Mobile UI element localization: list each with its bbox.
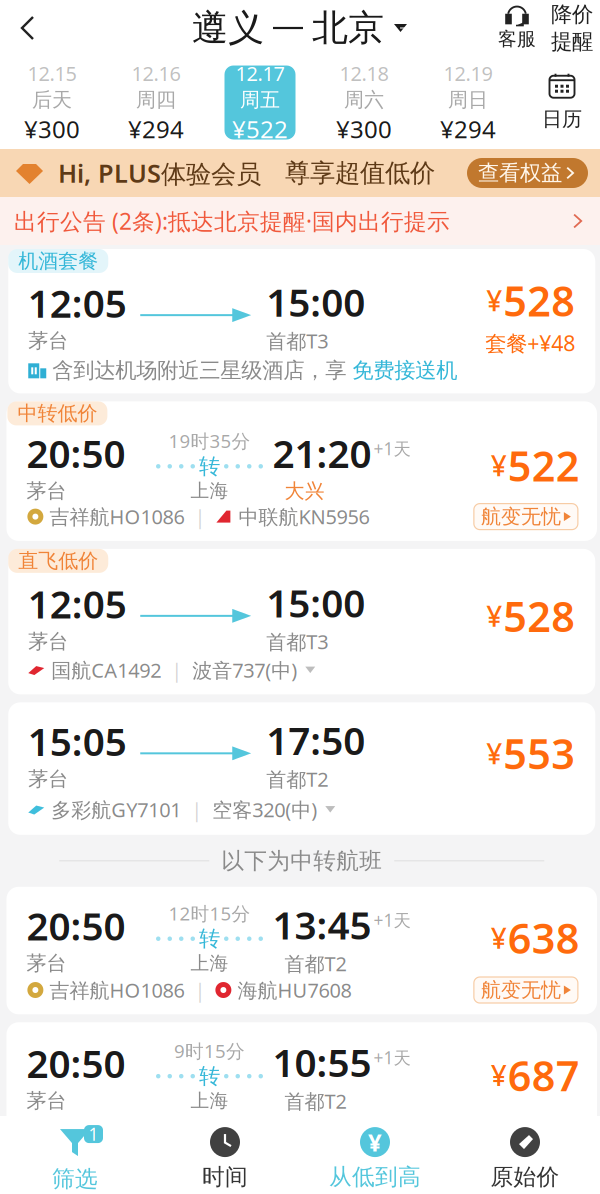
staticText: 转 xyxy=(199,926,220,952)
staticText: 1 xyxy=(88,1123,98,1146)
staticText: 尊享超值低价 xyxy=(261,157,435,188)
staticText: 9时15分 xyxy=(174,1038,245,1063)
button[interactable]: 客服 xyxy=(490,0,544,56)
staticText: 机酒套餐 xyxy=(18,249,98,273)
button[interactable]: 12.17 xyxy=(208,56,312,149)
button[interactable]: 12.16 xyxy=(104,56,208,149)
staticText: 20:50 xyxy=(26,427,125,479)
staticText: 522 xyxy=(508,438,580,493)
staticText: 周日 xyxy=(448,88,488,112)
button[interactable]: 12.15 xyxy=(0,56,104,149)
staticText: 12.16 xyxy=(131,60,180,87)
staticText: 提醒 xyxy=(551,28,593,55)
button[interactable]: 降价 xyxy=(544,0,600,56)
staticText: 17:50 xyxy=(266,714,365,766)
staticText: 中转低价 xyxy=(17,401,97,426)
staticText: 套餐+¥48 xyxy=(485,329,575,357)
button[interactable]: 返回 xyxy=(0,0,56,56)
button[interactable]: Hi, PLUS体验会员 xyxy=(0,149,600,197)
button[interactable]: 出行公告 (2条):抵达北京提醒·国内出行提示 xyxy=(0,197,600,245)
staticText: 波音737(中) xyxy=(192,657,297,683)
staticText: 20:50 xyxy=(26,1037,125,1089)
staticText: | xyxy=(161,657,192,683)
button[interactable]: 12.18 xyxy=(312,56,416,149)
staticText: +1天 xyxy=(373,1046,410,1069)
staticText: Hi, PLUS体验会员 xyxy=(44,156,261,190)
staticText: 免费接送机 xyxy=(352,357,457,383)
staticText: ¥ xyxy=(491,1057,507,1094)
staticText: 日历 xyxy=(542,107,582,131)
staticText: 茅台 xyxy=(26,1089,66,1113)
staticText: 687 xyxy=(508,1048,580,1103)
staticText: 13:45 xyxy=(272,899,371,950)
staticText: ¥300 xyxy=(336,113,392,145)
staticText: 周六 xyxy=(344,88,384,112)
staticText: 查看权益 xyxy=(478,160,562,186)
staticText: 大兴 xyxy=(284,479,324,503)
staticText: 国航CA1492 xyxy=(45,657,161,683)
staticText: 19时35分 xyxy=(168,428,250,453)
staticText: 上海 xyxy=(190,479,228,502)
button[interactable]: 航变无忧 xyxy=(474,504,578,530)
staticText: 15:00 xyxy=(266,276,365,327)
staticText: 首都T2 xyxy=(284,1088,346,1114)
button[interactable]: 原始价 xyxy=(450,1127,600,1191)
staticText: 航变无忧 xyxy=(481,978,561,1002)
button[interactable]: 日历 xyxy=(524,56,600,149)
staticText: 茅台 xyxy=(28,629,68,654)
staticText: +1天 xyxy=(373,437,410,460)
staticText: 茅台 xyxy=(28,328,68,353)
button[interactable]: 1 xyxy=(0,1125,150,1193)
staticText: 12.19 xyxy=(443,60,492,87)
staticText: | xyxy=(184,977,215,1003)
staticText: 638 xyxy=(508,910,580,965)
staticText: 直飞低价 xyxy=(18,549,98,573)
button[interactable]: 时间 xyxy=(150,1127,300,1191)
staticText: ¥ xyxy=(486,597,502,634)
staticText: 以下为中转航班 xyxy=(221,847,382,875)
staticText: 528 xyxy=(503,588,575,643)
staticText: 茅台 xyxy=(26,479,66,503)
staticText: ¥ xyxy=(491,447,507,484)
staticText: 转 xyxy=(199,1063,220,1089)
staticText: 15:05 xyxy=(28,715,127,767)
staticText: 12.15 xyxy=(27,60,76,87)
staticText: 10:55 xyxy=(272,1036,371,1088)
staticText: 12.17 xyxy=(235,60,284,87)
staticText: 遵义 xyxy=(192,6,264,50)
staticText: 周四 xyxy=(136,88,176,112)
staticText: 上海 xyxy=(190,1089,228,1112)
staticText: 茅台 xyxy=(26,951,66,976)
staticText: 海航HU7608 xyxy=(231,977,351,1003)
staticText: 从低到高 xyxy=(329,1163,421,1191)
staticText: ¥300 xyxy=(24,113,80,145)
staticText: 茅台 xyxy=(28,767,68,791)
staticText: ¥294 xyxy=(128,113,184,145)
staticText: 12:05 xyxy=(28,578,127,629)
staticText: 15:00 xyxy=(266,577,365,628)
staticText: 12.18 xyxy=(339,60,388,87)
staticText: 中联航KN5956 xyxy=(232,503,369,530)
staticText: 转 xyxy=(199,453,220,479)
staticText: 出行公告 (2条):抵达北京提醒·国内出行提示 xyxy=(14,206,450,236)
staticText: 12:05 xyxy=(28,277,127,328)
staticText: +1天 xyxy=(373,908,410,931)
staticText: 21:20 xyxy=(272,427,371,479)
staticText: 筛选 xyxy=(52,1165,98,1193)
staticText: ¥ xyxy=(491,919,507,956)
staticText: ¥ xyxy=(486,282,502,319)
staticText: 上海 xyxy=(190,952,228,975)
staticText: ¥522 xyxy=(232,113,288,145)
staticText: 后天 xyxy=(32,88,72,112)
staticText: ¥ xyxy=(368,1126,382,1158)
staticText: 553 xyxy=(503,726,575,781)
button[interactable]: 航变无忧 xyxy=(474,977,578,1003)
button[interactable]: 12.19 xyxy=(416,56,520,149)
staticText: 首都T3 xyxy=(266,327,328,354)
staticText: 多彩航GY7101 xyxy=(45,796,181,823)
staticText: 原始价 xyxy=(490,1163,559,1191)
button[interactable]: ¥ xyxy=(300,1127,450,1191)
staticText: 降价 xyxy=(551,1,593,27)
staticText: 航变无忧 xyxy=(481,504,561,529)
staticText: 空客320(中) xyxy=(212,796,317,823)
